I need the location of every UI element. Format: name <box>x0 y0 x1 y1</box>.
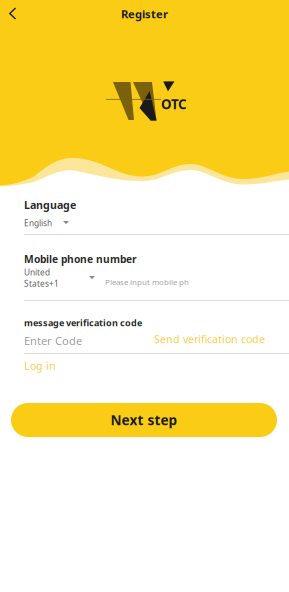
staticText: OTC <box>161 95 187 113</box>
button[interactable]: English <box>24 216 265 230</box>
staticText: United States+1 <box>24 267 59 289</box>
staticText: Language <box>24 197 76 212</box>
button[interactable]: Log in <box>24 358 64 372</box>
staticText: Mobile phone number <box>24 252 137 266</box>
staticText: Send verification code <box>154 332 265 346</box>
staticText: English <box>24 217 52 229</box>
button[interactable]: Next step <box>11 403 277 437</box>
button[interactable]: United States+1 <box>24 266 95 290</box>
staticText: Enter Code <box>24 333 82 348</box>
staticText: message verification code <box>24 316 142 329</box>
staticText: Log in <box>24 358 56 373</box>
staticText: Please input mobile ph <box>105 276 189 287</box>
button[interactable]: Back <box>0 1 26 26</box>
staticText: Register <box>121 6 168 22</box>
button[interactable]: Send verification code <box>151 332 265 346</box>
staticText: Next step <box>110 411 177 429</box>
